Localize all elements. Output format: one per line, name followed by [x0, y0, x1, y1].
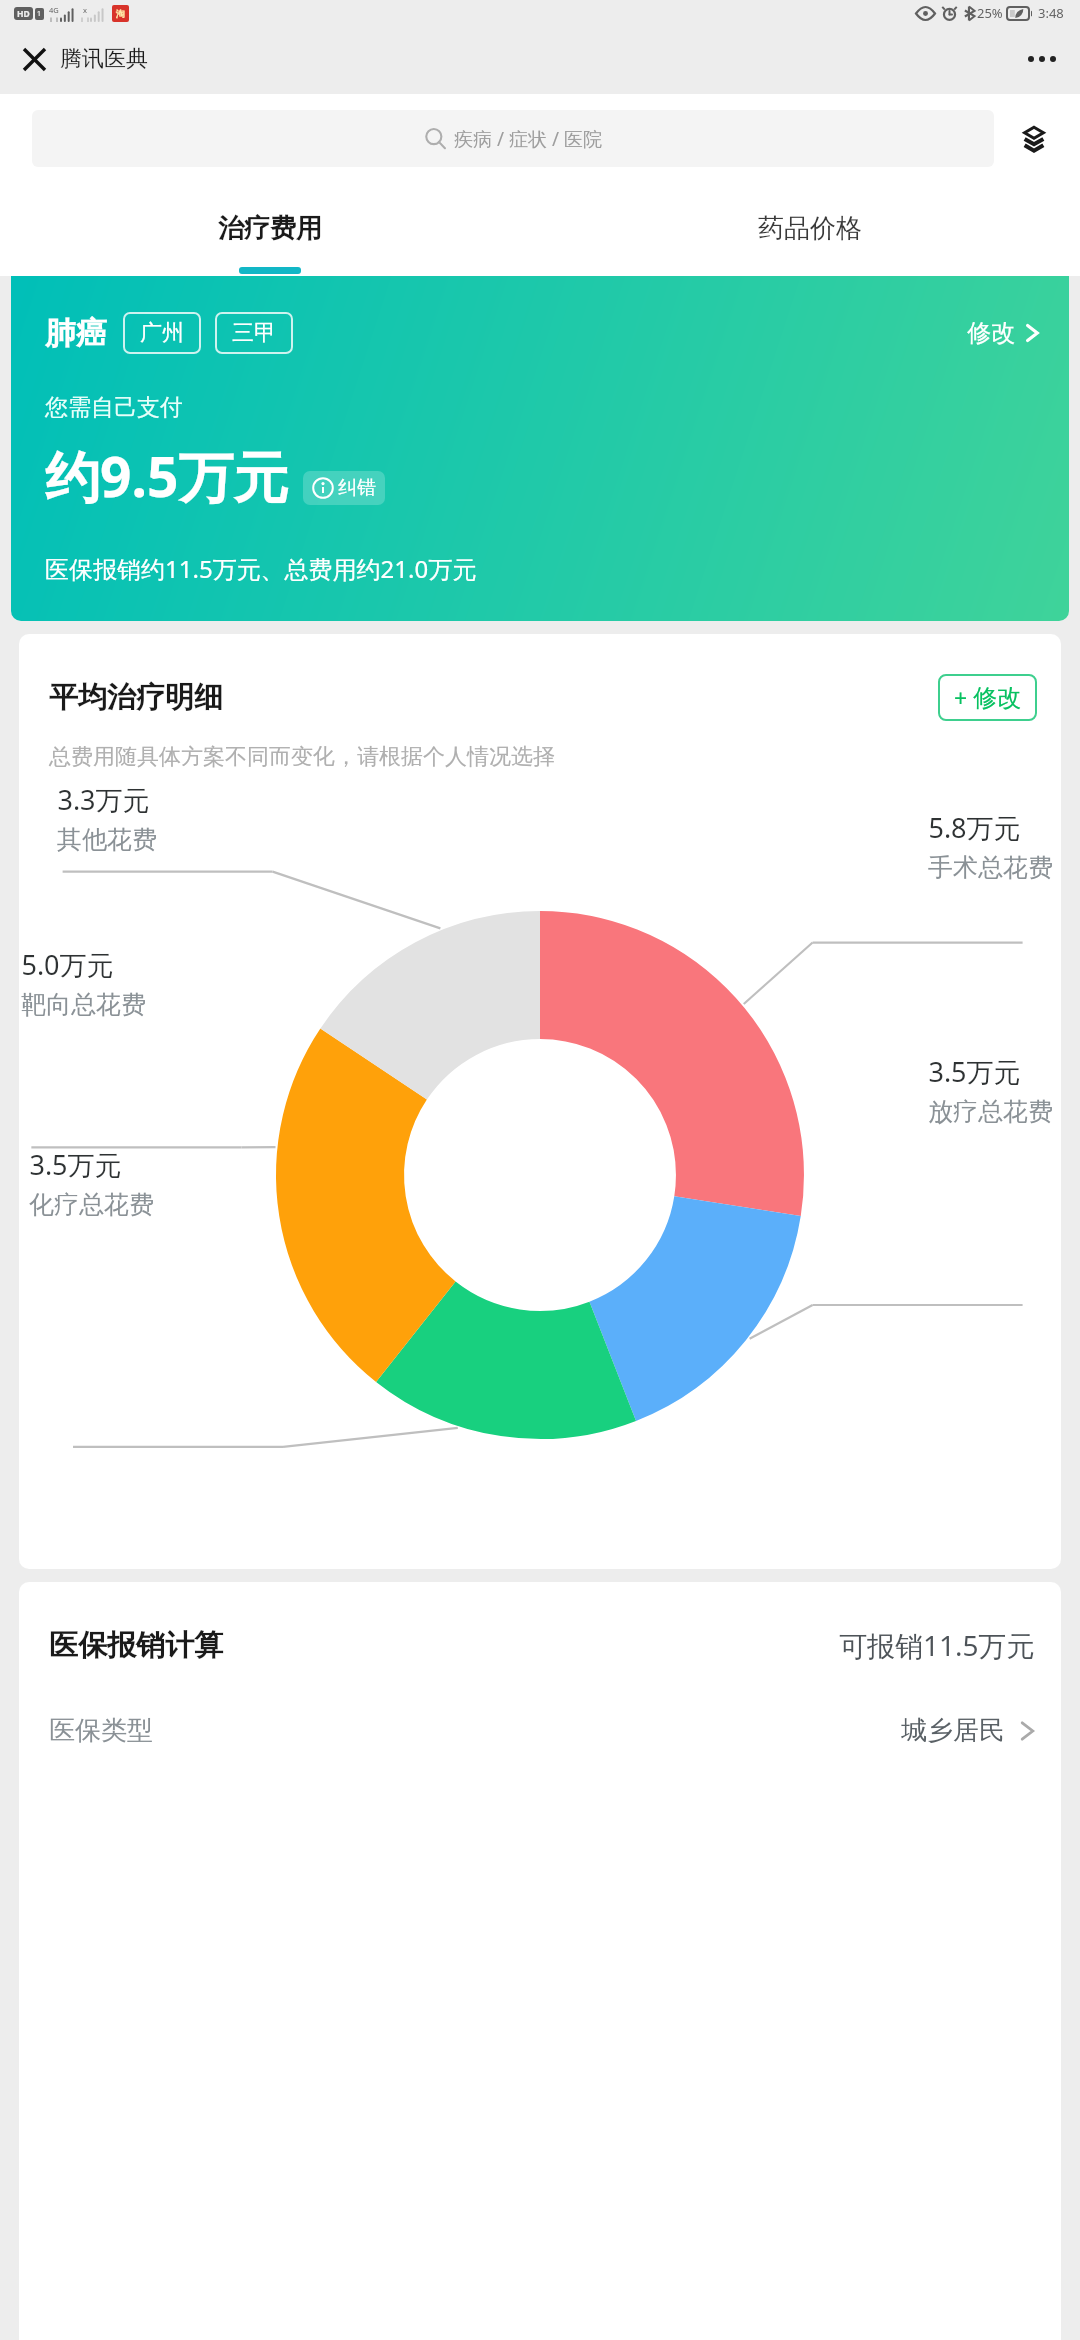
- staticText: 医保报销约11.5万元、总费用约21.0万元: [45, 552, 477, 585]
- button[interactable]: More options: [1014, 31, 1070, 87]
- staticText: 肺癌: [45, 314, 107, 353]
- button[interactable]: 医保类型: [19, 1714, 1061, 1747]
- button[interactable]: 肺癌: [11, 276, 1069, 621]
- staticText: 医保类型: [49, 1714, 153, 1747]
- staticText: 城乡居民: [901, 1714, 1005, 1747]
- button[interactable]: Close: [8, 33, 60, 85]
- staticText: 医保报销计算: [49, 1627, 223, 1664]
- button[interactable]: 三甲: [215, 312, 293, 354]
- staticText: 淘: [116, 8, 125, 19]
- button[interactable]: 疾病 / 症状 / 医院: [32, 110, 994, 167]
- staticText: 纠错: [338, 476, 376, 500]
- staticText: +: [954, 682, 968, 713]
- button[interactable]: 广州: [123, 312, 201, 354]
- staticText: 平均治疗明细: [49, 679, 223, 716]
- button[interactable]: 纠错: [303, 471, 385, 505]
- staticText: 化疗总花费: [29, 1189, 154, 1220]
- staticText: 治疗费用: [218, 212, 322, 245]
- staticText: 5.8万元: [928, 809, 1021, 846]
- staticText: 总费用随具体方案不同而变化，请根据个人情况选择: [49, 743, 555, 771]
- staticText: 约9.5万元: [45, 438, 289, 513]
- staticText: 修改: [973, 683, 1021, 713]
- staticText: 修改: [967, 318, 1015, 348]
- staticText: 4G: [49, 5, 59, 15]
- staticText: 腾讯医典: [60, 45, 148, 73]
- staticText: 25%: [977, 4, 1003, 22]
- staticText: 手术总花费: [928, 852, 1053, 883]
- staticText: 您需自己支付: [45, 393, 183, 422]
- staticText: 3.5万元: [29, 1146, 122, 1183]
- staticText: 药品价格: [758, 212, 862, 245]
- staticText: 3.3万元: [57, 781, 150, 818]
- staticText: 放疗总花费: [928, 1096, 1053, 1127]
- staticText: HD: [17, 8, 30, 20]
- staticText: 靶向总花费: [21, 989, 146, 1020]
- staticText: 广州: [140, 319, 184, 347]
- staticText: 三甲: [232, 319, 276, 347]
- staticText: 疾病 / 症状 / 医院: [454, 126, 602, 152]
- staticText: 1: [37, 9, 42, 19]
- staticText: x: [83, 5, 87, 15]
- staticText: 其他花费: [57, 824, 157, 855]
- button[interactable]: +: [938, 674, 1037, 721]
- button[interactable]: Layers: [1012, 117, 1056, 161]
- button[interactable]: 修改: [967, 318, 1043, 348]
- button[interactable]: 治疗费用: [0, 181, 540, 276]
- staticText: 3:48: [1038, 4, 1064, 22]
- staticText: 3.5万元: [928, 1053, 1021, 1090]
- staticText: 5.0万元: [21, 946, 114, 983]
- button[interactable]: 药品价格: [540, 181, 1080, 276]
- staticText: 可报销11.5万元: [839, 1626, 1035, 1664]
